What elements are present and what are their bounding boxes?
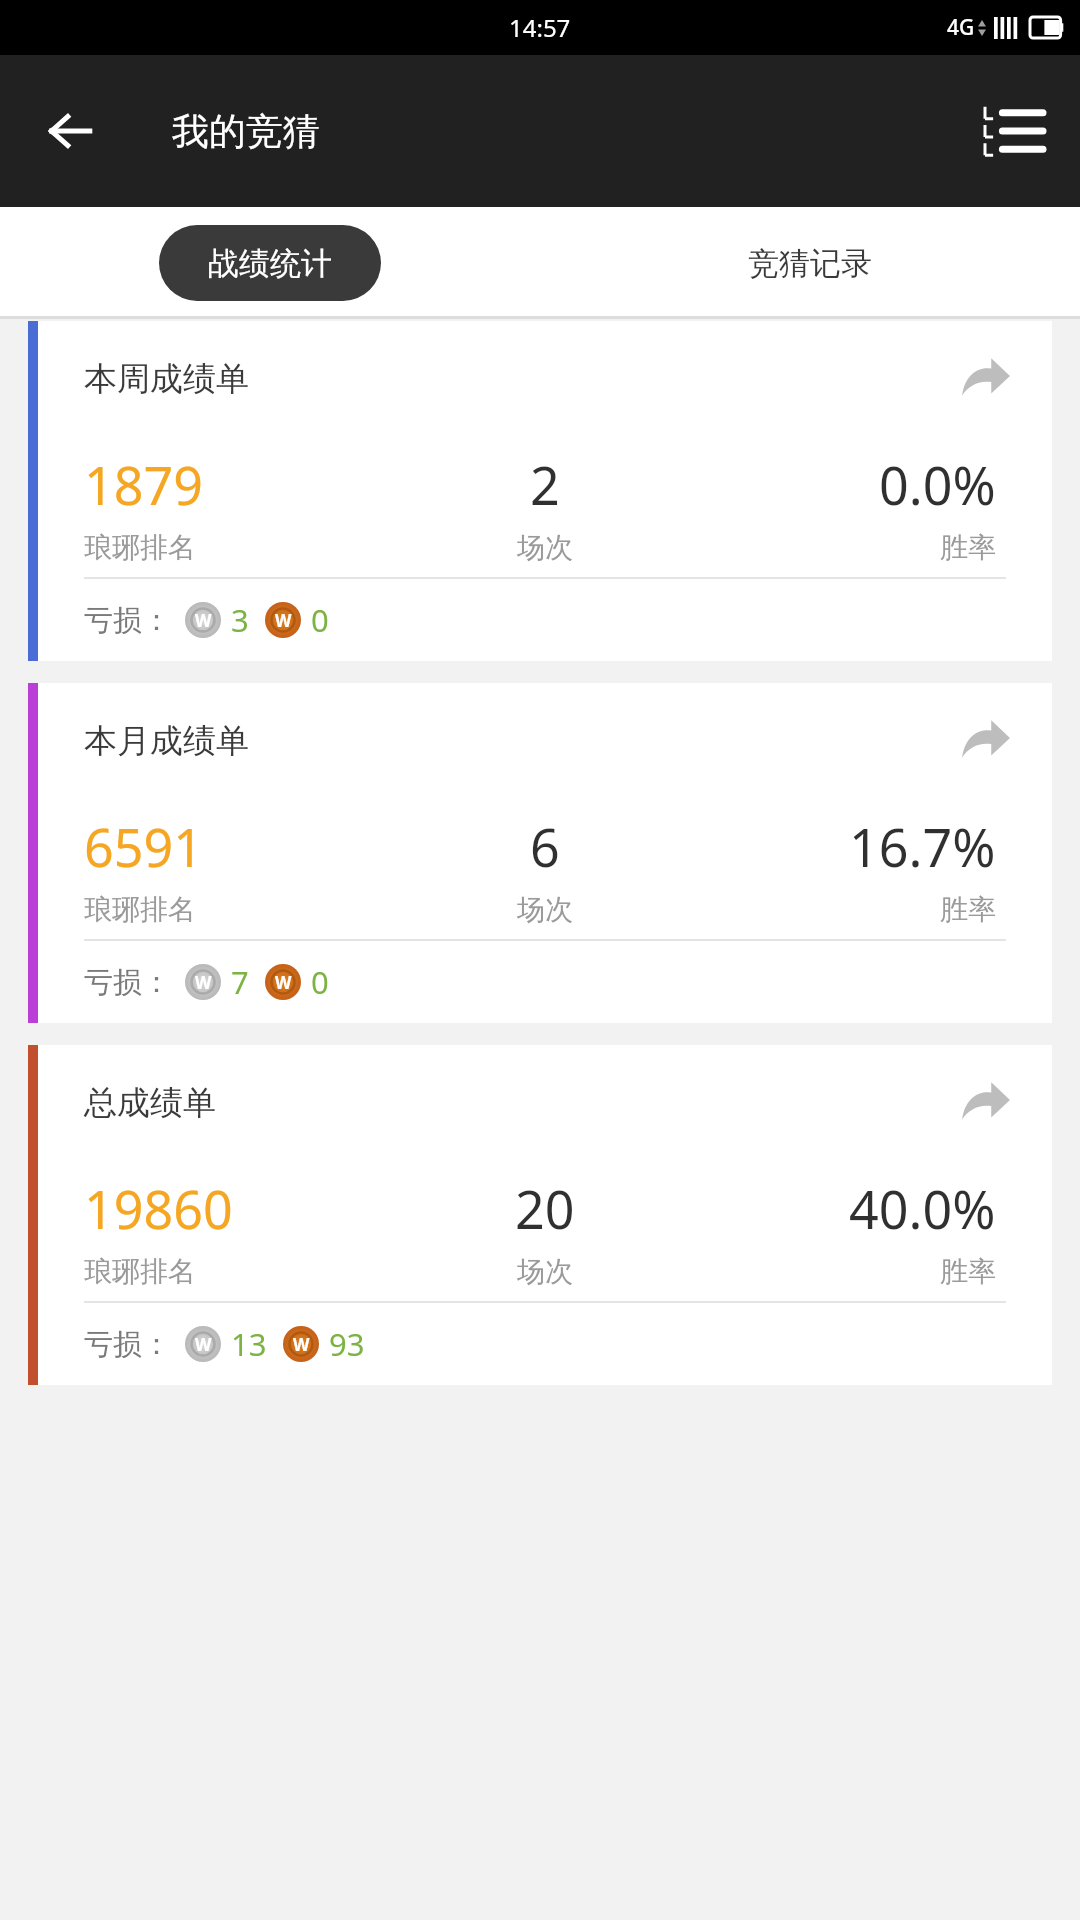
staticText: 亏损： <box>84 1326 171 1363</box>
button[interactable]: Back <box>30 91 110 171</box>
staticText: 1879 <box>84 449 203 520</box>
staticText: 战绩统计 <box>208 244 332 283</box>
button[interactable]: Share <box>954 1072 1016 1134</box>
staticText: 亏损： <box>84 602 171 639</box>
staticText: 0 <box>311 961 329 1003</box>
staticText: 4G <box>947 13 975 42</box>
staticText: 琅琊排名 <box>84 530 196 565</box>
staticText: W <box>195 1333 212 1356</box>
staticText: 2 <box>530 449 560 520</box>
staticText: 14:57 <box>509 11 571 44</box>
staticText: 胜率 <box>940 1254 996 1289</box>
staticText: 本月成绩单 <box>84 720 249 762</box>
staticText: 竞猜记录 <box>748 244 872 283</box>
staticText: 40.0% <box>849 1173 996 1244</box>
staticText: 胜率 <box>940 892 996 927</box>
staticText: 我的竞猜 <box>172 108 320 155</box>
button[interactable]: 本月成绩单 <box>28 683 1052 1023</box>
staticText: 6 <box>530 811 560 882</box>
staticText: 场次 <box>517 1254 573 1289</box>
button[interactable]: 总成绩单 <box>28 1045 1052 1385</box>
button[interactable]: 本周成绩单 <box>28 321 1052 661</box>
staticText: 16.7% <box>849 811 996 882</box>
staticText: 总成绩单 <box>84 1082 216 1124</box>
staticText: 琅琊排名 <box>84 1254 196 1289</box>
staticText: 19860 <box>84 1173 233 1244</box>
staticText: W <box>195 609 212 632</box>
staticText: W <box>275 609 292 632</box>
staticText: 胜率 <box>940 530 996 565</box>
staticText: W <box>293 1333 310 1356</box>
staticText: 亏损： <box>84 964 171 1001</box>
staticText: 93 <box>329 1323 365 1365</box>
staticText: 琅琊排名 <box>84 892 196 927</box>
staticText: 7 <box>231 961 249 1003</box>
staticText: 6591 <box>84 811 203 882</box>
button[interactable]: Share <box>954 348 1016 410</box>
button[interactable]: 战绩统计 <box>159 225 381 301</box>
staticText: W <box>195 971 212 994</box>
button[interactable]: List menu <box>976 93 1052 169</box>
staticText: 3 <box>231 599 249 641</box>
button[interactable]: 竞猜记录 <box>540 207 1080 319</box>
staticText: 本周成绩单 <box>84 358 249 400</box>
staticText: 13 <box>231 1323 267 1365</box>
staticText: 0 <box>311 599 329 641</box>
staticText: W <box>275 971 292 994</box>
staticText: 0.0% <box>879 449 996 520</box>
button[interactable]: Share <box>954 710 1016 772</box>
staticText: 场次 <box>517 530 573 565</box>
staticText: 场次 <box>517 892 573 927</box>
staticText: 20 <box>515 1173 575 1244</box>
